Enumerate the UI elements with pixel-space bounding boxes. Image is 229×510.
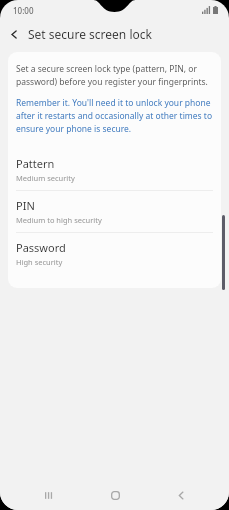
staticText: Medium security bbox=[16, 173, 75, 183]
staticText: 10:00 bbox=[13, 5, 34, 16]
staticText: High security bbox=[16, 257, 63, 267]
button[interactable]: Password bbox=[8, 233, 221, 274]
button[interactable]: Back bbox=[0, 20, 28, 48]
button[interactable]: Pattern bbox=[8, 149, 221, 190]
staticText: Password bbox=[16, 240, 66, 255]
staticText: PIN bbox=[16, 198, 35, 213]
staticText: Pattern bbox=[16, 156, 55, 171]
button[interactable]: Back bbox=[167, 481, 195, 509]
staticText: Set secure screen lock bbox=[28, 26, 152, 42]
button[interactable]: Recents bbox=[34, 481, 62, 509]
staticText: Set a secure screen lock type (pattern, … bbox=[16, 63, 213, 88]
button[interactable]: Home bbox=[101, 481, 129, 509]
staticText: Remember it. You'll need it to unlock yo… bbox=[16, 97, 213, 135]
button[interactable]: PIN bbox=[8, 191, 221, 232]
staticText: Medium to high security bbox=[16, 215, 102, 225]
